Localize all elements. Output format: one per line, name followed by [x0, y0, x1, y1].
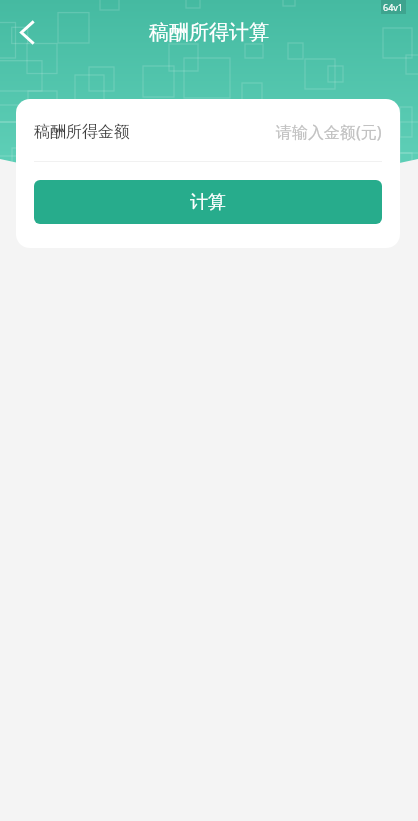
staticText: 稿酬所得计算: [149, 20, 269, 45]
staticText: 稿酬所得金额: [34, 122, 130, 142]
button[interactable]: Back: [3, 8, 51, 56]
staticText: 请输入金额(元): [276, 121, 382, 143]
button[interactable]: 稿酬所得金额: [34, 103, 382, 161]
staticText: 64v1: [383, 1, 404, 13]
button[interactable]: 计算: [34, 180, 382, 224]
staticText: 计算: [190, 191, 226, 214]
